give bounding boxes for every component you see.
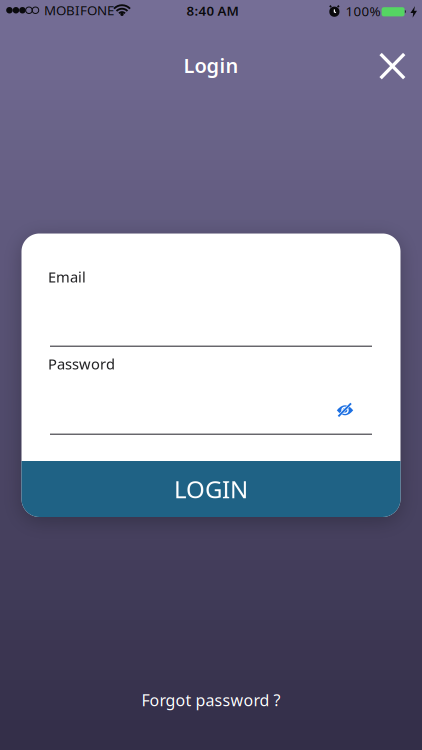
staticText: Email xyxy=(48,267,86,286)
staticText: Password xyxy=(48,354,115,374)
staticText: 8:40 AM xyxy=(186,2,238,19)
staticText: 100% xyxy=(345,2,380,20)
button[interactable]: LOGIN xyxy=(21,461,400,517)
button[interactable]: Show password xyxy=(332,398,358,422)
staticText: LOGIN xyxy=(174,473,248,505)
staticText: Forgot password ? xyxy=(141,689,280,711)
staticText: MOBIFONE xyxy=(44,1,114,19)
button[interactable]: Forgot password ? xyxy=(141,689,280,711)
button[interactable]: Close xyxy=(373,47,411,86)
staticText: Login xyxy=(183,52,238,78)
